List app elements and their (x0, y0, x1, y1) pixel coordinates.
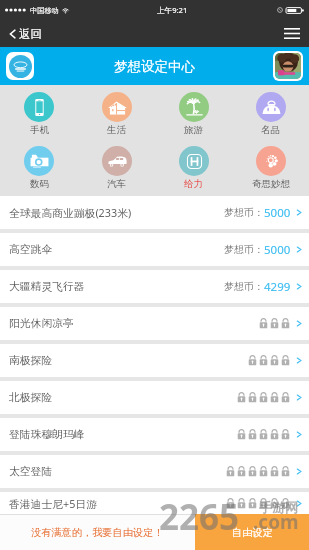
button[interactable]: 高空跳伞 (0, 233, 309, 266)
button[interactable]: 北极探险 (0, 381, 309, 414)
staticText: 汽车 (107, 178, 126, 190)
button[interactable]: 数码 (0, 146, 78, 190)
staticText: 返回 (19, 27, 42, 41)
staticText: 2265 (159, 493, 240, 541)
staticText: 太空登陆 (9, 465, 53, 479)
staticText: 没有满意的，我要自由设定！ (31, 526, 164, 539)
staticText: 手游网 (259, 499, 298, 515)
button[interactable]: Menu (272, 23, 309, 44)
button[interactable]: 给力 (155, 146, 232, 190)
staticText: 手机 (30, 124, 49, 136)
button[interactable]: 全球最高商业蹦极(233米) (0, 196, 309, 229)
staticText: 全球最高商业蹦极(233米) (9, 205, 132, 220)
button[interactable]: 南极探险 (0, 344, 309, 377)
staticText: .com (253, 509, 299, 535)
button[interactable]: 太空登陆 (0, 455, 309, 488)
staticText: 4299 (264, 279, 291, 295)
staticText: 给力 (184, 178, 203, 190)
button[interactable]: 生活 (78, 92, 155, 136)
staticText: 上午9:21 (157, 5, 188, 15)
staticText: 数码 (30, 178, 49, 190)
button[interactable]: 香港迪士尼+5日游 (0, 492, 309, 514)
button[interactable]: 名品 (232, 92, 309, 136)
button[interactable]: 汽车 (78, 146, 155, 190)
staticText: 梦想币： (224, 243, 264, 256)
button[interactable]: App logo (6, 52, 34, 80)
button[interactable]: 旅游 (155, 92, 232, 136)
staticText: 5000 (264, 205, 291, 221)
button[interactable]: 自由设定 (195, 514, 309, 550)
staticText: 梦想币： (224, 280, 264, 293)
staticText: 梦想币： (224, 206, 264, 219)
staticText: 香港迪士尼+5日游 (9, 496, 97, 511)
button[interactable]: 阳光休闲凉亭 (0, 307, 309, 340)
staticText: 梦想设定中心 (114, 58, 195, 75)
staticText: 高空跳伞 (9, 243, 53, 257)
staticText: 奇思妙想 (252, 178, 290, 190)
button[interactable]: 登陆珠穆朗玛峰 (0, 418, 309, 451)
staticText: 北极探险 (9, 391, 53, 405)
staticText: 5000 (264, 242, 291, 258)
staticText: 阳光休闲凉亭 (9, 317, 74, 331)
button[interactable]: 手机 (0, 92, 78, 136)
button[interactable]: 大疆精灵飞行器 (0, 270, 309, 303)
staticText: 登陆珠穆朗玛峰 (9, 428, 85, 442)
button[interactable]: 返回 (0, 23, 52, 45)
staticText: 南极探险 (9, 354, 53, 368)
staticText: 旅游 (184, 124, 203, 136)
staticText: 生活 (107, 124, 126, 136)
staticText: 大疆精灵飞行器 (9, 280, 85, 294)
staticText: 名品 (261, 124, 280, 136)
staticText: 中国移动 (30, 6, 59, 15)
button[interactable]: Profile (273, 51, 303, 81)
staticText: 自由设定 (232, 526, 273, 539)
button[interactable]: 奇思妙想 (232, 146, 309, 190)
